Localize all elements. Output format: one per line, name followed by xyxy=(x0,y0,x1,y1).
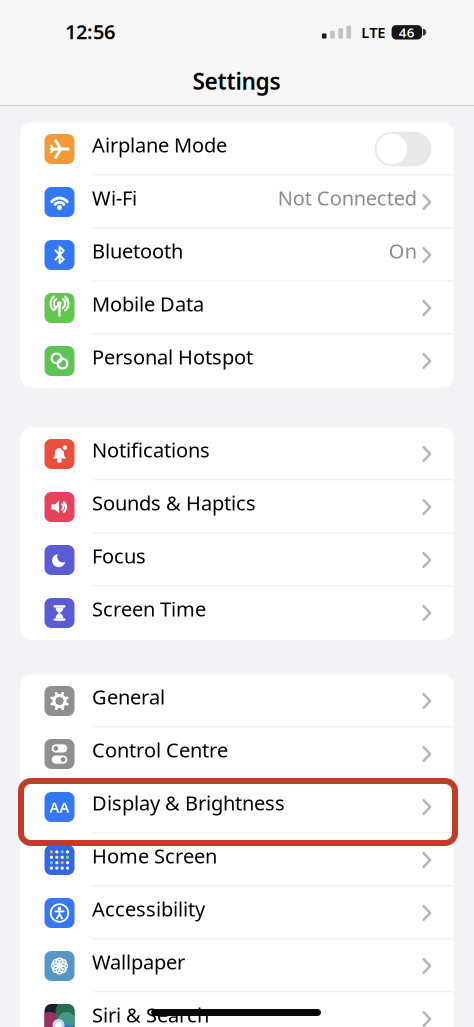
staticText: Settings xyxy=(192,66,280,96)
button[interactable]: Mobile Data xyxy=(20,281,453,334)
staticText: LTE xyxy=(361,22,385,42)
staticText: Wi-Fi xyxy=(92,184,137,211)
staticText: Screen Time xyxy=(92,595,206,622)
button[interactable]: Wi-Fi xyxy=(20,175,453,228)
button[interactable]: Screen Time xyxy=(20,586,453,639)
button[interactable]: Sounds & Haptics xyxy=(20,480,453,533)
staticText: 46 xyxy=(399,23,415,41)
staticText: Personal Hotspot xyxy=(92,343,253,370)
staticText: Sounds & Haptics xyxy=(92,489,256,516)
staticText: Notifications xyxy=(92,436,210,463)
button[interactable]: Focus xyxy=(20,533,453,586)
button[interactable]: Airplane Mode xyxy=(20,122,453,175)
staticText: AA xyxy=(49,797,69,817)
staticText: 12:56 xyxy=(65,18,115,45)
button[interactable]: Home Screen xyxy=(20,833,453,886)
staticText: Siri & Search xyxy=(92,1001,209,1027)
button[interactable]: Siri & Search xyxy=(20,992,453,1027)
staticText: Bluetooth xyxy=(92,237,183,264)
button[interactable]: Wallpaper xyxy=(20,939,453,992)
button[interactable]: AA xyxy=(20,780,453,833)
staticText: On xyxy=(389,237,417,264)
staticText: Focus xyxy=(92,542,146,569)
staticText: Mobile Data xyxy=(92,290,204,317)
staticText: General xyxy=(92,683,165,710)
staticText: Accessibility xyxy=(92,895,205,922)
staticText: Display & Brightness xyxy=(92,789,285,816)
button[interactable]: Notifications xyxy=(20,427,453,480)
button[interactable]: Bluetooth xyxy=(20,228,453,281)
button[interactable]: Control Centre xyxy=(20,727,453,780)
button[interactable]: Personal Hotspot xyxy=(20,334,453,387)
staticText: Wallpaper xyxy=(92,948,185,975)
button[interactable]: Accessibility xyxy=(20,886,453,939)
staticText: Airplane Mode xyxy=(92,131,227,158)
staticText: Control Centre xyxy=(92,736,228,763)
button[interactable]: General xyxy=(20,674,453,727)
staticText: Home Screen xyxy=(92,842,217,869)
staticText: Not Connected xyxy=(278,184,417,211)
